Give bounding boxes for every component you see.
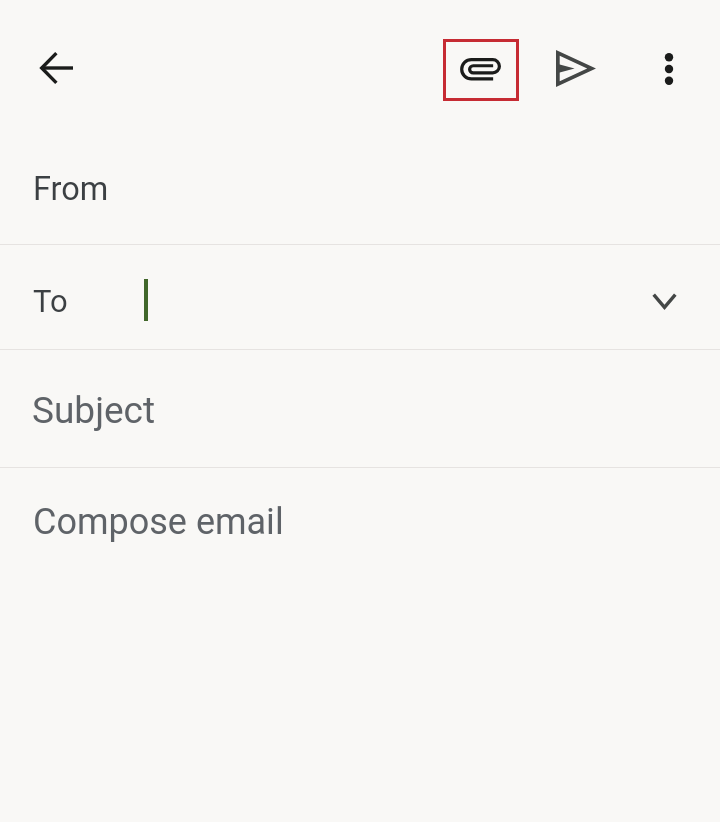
button[interactable]: To (0, 245, 720, 349)
staticText: To (33, 283, 68, 319)
button[interactable]: Back (32, 44, 80, 92)
button[interactable]: Attach file (443, 39, 519, 101)
staticText: Subject (32, 389, 156, 432)
button[interactable]: Send (552, 44, 600, 92)
button[interactable]: Compose email (0, 468, 720, 588)
button[interactable]: Expand recipients (640, 277, 688, 325)
staticText: Compose email (33, 501, 284, 543)
button[interactable]: From (0, 130, 720, 244)
staticText: From (33, 170, 109, 208)
button[interactable]: More options (645, 45, 693, 93)
button[interactable]: Subject (0, 350, 720, 467)
